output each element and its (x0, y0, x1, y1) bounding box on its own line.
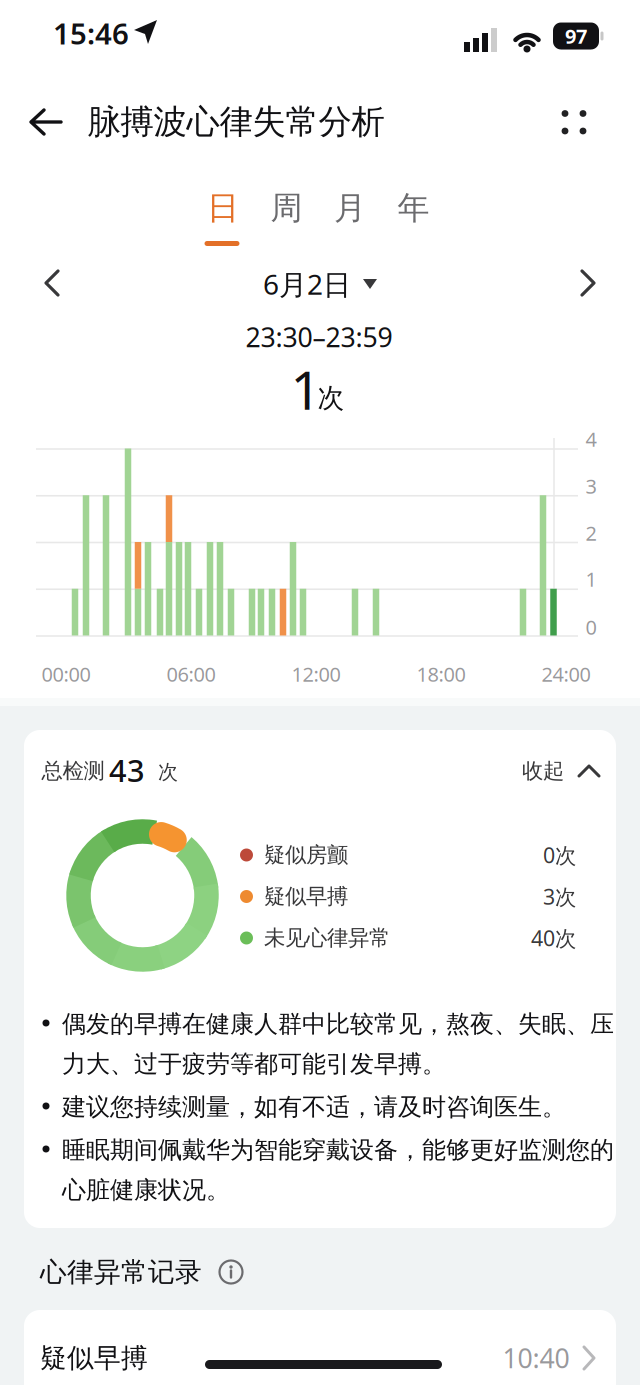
staticText: 次 (317, 382, 344, 414)
staticText: 疑似早搏 (40, 1342, 148, 1374)
button[interactable]: 日 (193, 183, 253, 233)
staticText: 脉搏波心律失常分析 (87, 101, 384, 142)
staticText: 日 (207, 188, 239, 228)
button[interactable]: 年 (383, 183, 443, 233)
staticText: 06:00 (166, 661, 215, 687)
staticText: 疑似房颤 (264, 842, 348, 868)
staticText: 3次 (543, 882, 576, 911)
staticText: 睡眠期间佩戴华为智能穿戴设备，能够更好监测您的 (62, 1135, 614, 1165)
staticText: 偶发的早搏在健康人群中比较常见，熬夜、失眠、压 (62, 1009, 614, 1039)
staticText: 收起 (522, 758, 564, 784)
staticText: 3 (585, 473, 596, 499)
button[interactable]: 收起 (522, 758, 600, 784)
staticText: 23:30–23:59 (245, 319, 392, 355)
staticText: 2 (585, 520, 596, 546)
staticText: 周 (270, 188, 302, 228)
button[interactable]: 6月2日 (263, 265, 377, 303)
staticText: 15:46 (53, 13, 129, 52)
staticText: 次 (158, 760, 178, 784)
button[interactable]: 疑似早搏 (24, 1310, 616, 1385)
staticText: 97 (565, 23, 587, 49)
button[interactable]: 月 (320, 183, 380, 233)
staticText: 1 (585, 566, 596, 592)
button[interactable]: 周 (256, 183, 316, 233)
staticText: 月 (334, 188, 366, 228)
staticText: 建议您持续测量，如有不适，请及时咨询医生。 (62, 1092, 566, 1122)
staticText: 4 (585, 426, 596, 452)
staticText: 0次 (543, 841, 576, 869)
staticText: 心律异常记录 (40, 1256, 202, 1288)
button[interactable] (29, 109, 63, 135)
staticText: 24:00 (541, 661, 590, 687)
button[interactable] (45, 270, 59, 296)
staticText: 未见心律异常 (264, 925, 390, 951)
staticText: 总检测 (41, 758, 104, 784)
staticText: 40次 (531, 924, 576, 952)
staticText: 0 (585, 614, 596, 640)
staticText: 12:00 (291, 661, 340, 687)
button[interactable] (581, 270, 595, 296)
staticText: 00:00 (41, 661, 90, 687)
staticText: 年 (397, 188, 429, 228)
staticText: 疑似早搏 (264, 883, 348, 910)
staticText: 1 (290, 354, 321, 424)
button[interactable] (219, 1260, 243, 1284)
button[interactable] (561, 109, 587, 135)
staticText: 力大、过于疲劳等都可能引发早搏。 (62, 1049, 446, 1079)
staticText: 18:00 (416, 661, 465, 687)
staticText: 心脏健康状况。 (62, 1175, 230, 1205)
staticText: 43 (109, 750, 145, 790)
staticText: 6月2日 (263, 265, 351, 303)
staticText: 10:40 (502, 1340, 569, 1376)
